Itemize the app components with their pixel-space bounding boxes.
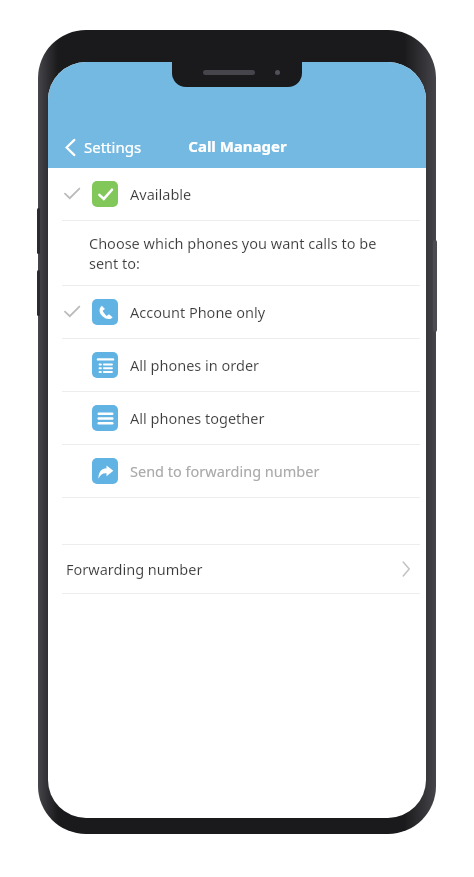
staticText: Choose which phones you want calls to be… (89, 233, 377, 274)
button[interactable]: All phones in order (48, 339, 426, 391)
button[interactable]: All phones together (48, 392, 426, 444)
staticText: All phones in order (130, 355, 260, 375)
staticText: Forwarding number (66, 559, 203, 579)
staticText: Send to forwarding number (130, 461, 320, 481)
staticText: Call Manager (188, 136, 287, 156)
button[interactable]: Available (48, 168, 426, 220)
staticText: Available (130, 184, 192, 204)
other: Open forwarding number (402, 562, 410, 576)
button[interactable]: Send to forwarding number (48, 445, 426, 497)
button[interactable]: Forwarding number (48, 545, 426, 593)
button[interactable]: Account Phone only (48, 286, 426, 338)
staticText: Account Phone only (130, 302, 266, 322)
staticText: Settings (84, 137, 142, 157)
button[interactable]: Settings (58, 132, 148, 162)
staticText: All phones together (130, 408, 265, 428)
